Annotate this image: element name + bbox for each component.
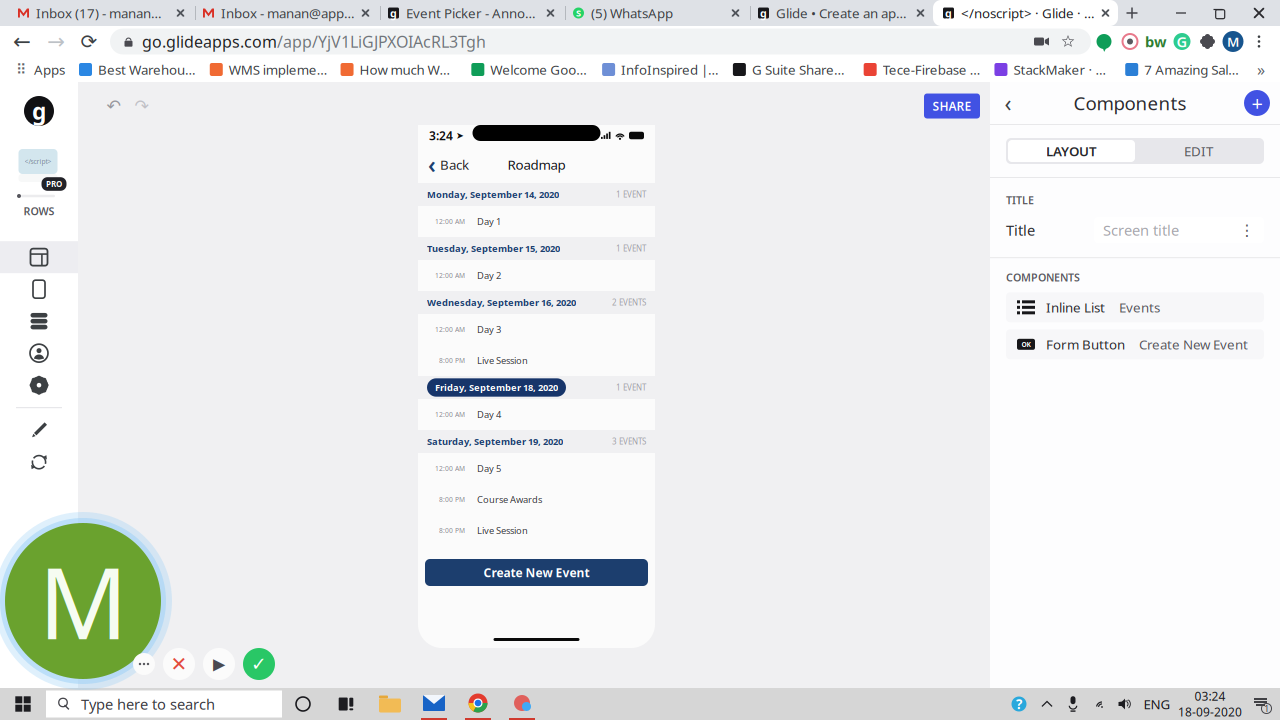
button[interactable]: EDIT [1135,140,1262,162]
button[interactable]: Notifications [1244,688,1280,720]
button[interactable]: Inbox (17) - manan@moderniz [8,0,193,26]
button[interactable]: More bookmarks [1250,58,1272,80]
button[interactable]: Tece-Firebase – Dat… [858,58,988,80]
button[interactable]: Messenger extension [1091,26,1117,56]
button[interactable]: Add component [1234,82,1280,124]
button[interactable]: g [933,0,1118,26]
staticText: Components [1073,91,1186,115]
button[interactable]: Glide home [0,90,78,132]
staticText: Create New Event [1139,335,1248,353]
button[interactable]: Minimize [1162,0,1200,26]
button[interactable]: 12:00 AM [418,314,655,345]
button[interactable]: 12:00 AM [418,260,655,291]
button[interactable]: Language [1138,688,1176,720]
button[interactable]: Preview [0,273,78,305]
staticText: </script> [24,157,51,166]
staticText: ↷ [134,96,149,116]
staticText: G Suite Shared… [752,61,852,78]
staticText: Glide • Create an app from a G [776,4,912,22]
button[interactable]: Volume [1112,688,1138,720]
staticText: ➤ [456,130,464,141]
staticText: Inbox (17) - manan@moderniz [36,4,172,22]
button[interactable]: OK [1006,329,1264,359]
button[interactable]: Data [0,305,78,337]
staticText: ⠿ [16,61,27,78]
button[interactable]: Help [1004,688,1034,720]
button[interactable]: Undo [100,93,128,119]
button[interactable]: Best Warehouse Ma… [73,58,204,80]
button[interactable]: 8:00 PM [418,484,655,515]
button[interactable]: Bitwarden extension [1143,26,1169,56]
button[interactable]: Inbox - manan@appswithoutc [193,0,378,26]
button[interactable]: go.glideapps.com [110,28,1091,54]
button[interactable]: Show hidden icons [1034,688,1060,720]
button[interactable]: 7 Amazing Sales Pr… [1119,58,1250,80]
button[interactable]: Grammarly extension [1169,26,1195,56]
button[interactable]: 8:00 PM [418,345,655,376]
button[interactable]: Maximize [1200,0,1238,26]
button[interactable]: File Explorer [368,688,412,720]
button[interactable]: 12:00 AM [418,206,655,237]
button[interactable]: Extensions [1195,26,1220,56]
button[interactable]: Chrome menu [1246,26,1272,56]
button[interactable]: Snip and Sketch [500,688,544,720]
button[interactable]: g [748,0,933,26]
button[interactable]: Design [0,414,78,446]
button[interactable]: How much WMS so… [335,58,465,80]
button[interactable]: InfoInspired | Inspir… [596,58,727,80]
button[interactable]: ‹ [418,149,479,179]
staticText: Form Button [1046,335,1125,353]
button[interactable]: StackMaker · Made… [988,58,1119,80]
staticText: Saturday, September 19, 2020 [427,435,563,448]
button[interactable]: Mail [412,688,456,720]
button[interactable]: Decline call [162,647,196,681]
button[interactable]: Forward [40,26,72,56]
button[interactable]: S [563,0,748,26]
button[interactable]: Accept call [242,647,276,681]
staticText: ▶ [213,655,225,673]
button[interactable]: ⠿ [8,58,73,80]
button[interactable]: Network [1086,688,1112,720]
button[interactable]: Create New Event [425,559,648,586]
staticText: 18-09-2020 [1178,704,1242,720]
staticText: 12:00 AM [435,410,465,419]
button[interactable]: G Suite Shared… [727,58,858,80]
button[interactable]: Chrome [456,688,500,720]
button[interactable]: Microphone [1060,688,1086,720]
button[interactable]: New tab [1118,0,1146,26]
button[interactable]: 12:00 AM [418,453,655,484]
staticText: (5) WhatsApp [591,4,673,22]
button[interactable]: Layout [0,241,78,273]
staticText: Back [440,156,469,173]
button[interactable]: Back [4,26,40,56]
button[interactable]: Inline List [1006,292,1264,322]
button[interactable]: 12:00 AM [418,399,655,430]
button[interactable]: Type here to search [46,690,282,717]
button[interactable]: Settings [0,369,78,401]
button[interactable]: Sizzy extension [1117,26,1143,56]
button[interactable]: Users [0,337,78,369]
button[interactable]: Screen title [1094,217,1264,243]
button[interactable]: Back [990,82,1026,124]
staticText: Create New Event [483,564,589,580]
button[interactable]: Reload [72,26,106,56]
staticText: Welcome Google S… [490,61,590,78]
button[interactable]: Sync [0,446,78,478]
button[interactable]: Welcome Google S… [465,58,596,80]
button[interactable]: More options [132,647,156,681]
button[interactable]: Start video [202,647,236,681]
button[interactable]: Task view [324,688,368,720]
staticText: Course Awards [477,493,542,506]
button[interactable]: SHARE [924,93,980,118]
button[interactable]: Redo [128,93,156,119]
button[interactable]: WMS implementati… [204,58,335,80]
button[interactable]: Start [0,688,46,720]
button[interactable]: LAYOUT [1008,140,1135,162]
button[interactable]: g [378,0,563,26]
button[interactable]: Close window [1238,0,1280,26]
button[interactable]: 03:24 [1176,688,1244,720]
staticText: 8:00 PM [439,356,465,365]
button[interactable]: 8:00 PM [418,515,655,546]
button[interactable]: Cortana [282,688,324,720]
button[interactable]: Profile [1220,26,1246,56]
